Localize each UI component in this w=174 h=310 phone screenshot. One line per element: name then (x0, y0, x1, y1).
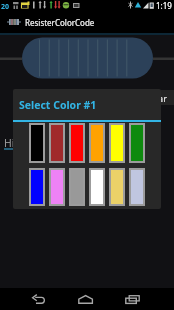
button[interactable] (109, 123, 125, 163)
button[interactable] (129, 123, 145, 163)
button[interactable]: Home (71, 292, 100, 307)
button[interactable] (29, 168, 45, 206)
button[interactable]: ResisterColorCode (0, 11, 174, 33)
button[interactable]: Recents (118, 292, 147, 307)
button[interactable] (109, 168, 125, 206)
button[interactable] (89, 123, 105, 163)
button[interactable] (49, 168, 65, 206)
button[interactable]: Clear (134, 90, 174, 105)
staticText: 1:19 (156, 0, 172, 11)
button[interactable] (89, 168, 105, 206)
staticText: Select Color #1 (19, 98, 97, 112)
button[interactable] (29, 123, 45, 163)
staticText: Clear (145, 92, 167, 104)
staticText: ResisterColorCode (25, 17, 95, 28)
button[interactable]: Back (24, 292, 53, 307)
staticText: Hi (4, 136, 15, 150)
staticText: 20 (1, 2, 10, 12)
button[interactable] (129, 168, 145, 206)
button[interactable] (49, 123, 65, 163)
button[interactable] (69, 123, 85, 163)
